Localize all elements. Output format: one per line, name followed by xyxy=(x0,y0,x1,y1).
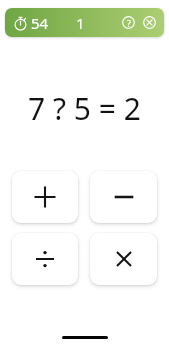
button[interactable] xyxy=(12,171,78,223)
staticText: ? xyxy=(127,17,131,29)
staticText: 54 xyxy=(31,13,49,33)
staticText: 1 xyxy=(76,13,85,33)
button[interactable]: 54 xyxy=(5,8,164,37)
button[interactable] xyxy=(90,171,157,223)
staticText: 7 ? 5 = 2 xyxy=(28,88,141,122)
button[interactable] xyxy=(143,16,156,29)
button[interactable] xyxy=(12,233,78,285)
button[interactable] xyxy=(90,233,157,285)
button[interactable]: ? xyxy=(122,16,135,29)
